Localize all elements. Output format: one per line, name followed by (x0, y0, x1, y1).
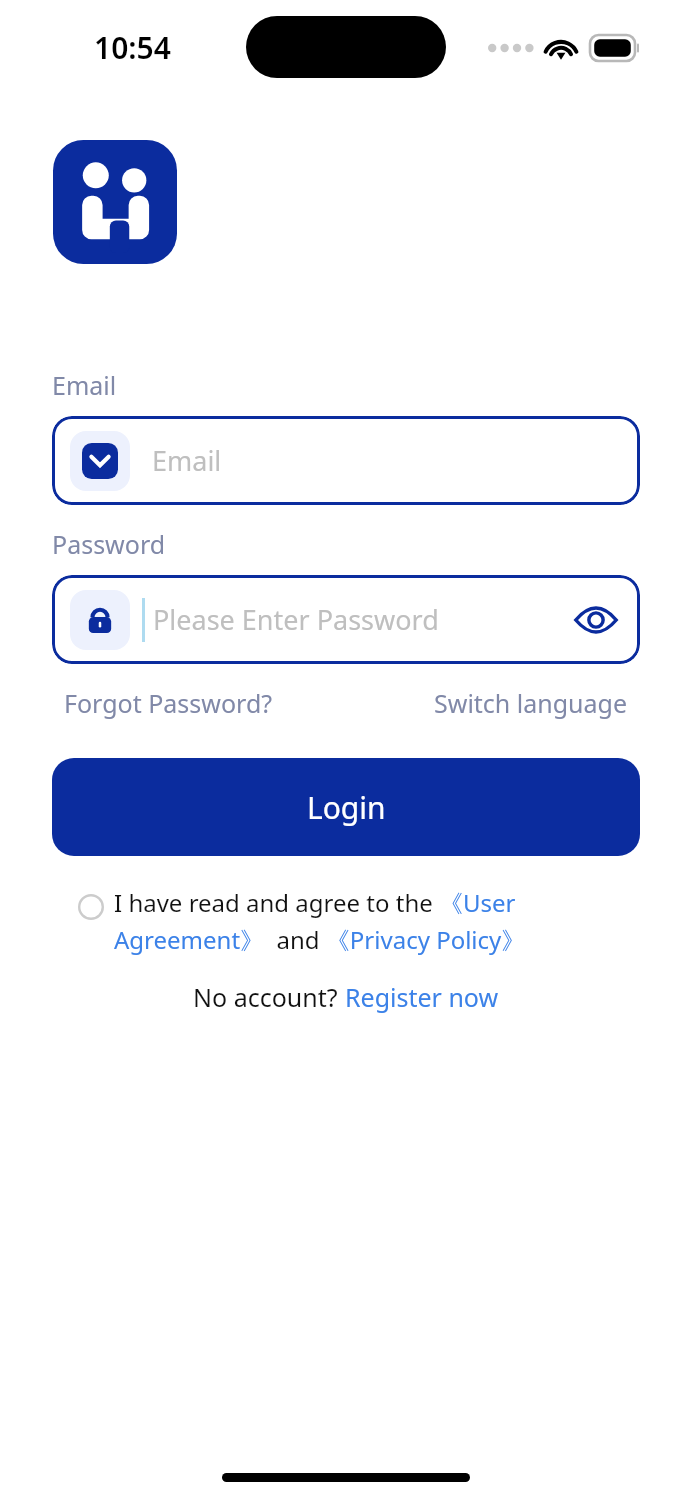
staticText: Please Enter Password (153, 601, 570, 638)
button[interactable]: Switch language (434, 686, 628, 720)
staticText: Login (307, 787, 386, 828)
button[interactable]: Agree to terms (78, 886, 652, 956)
staticText: No account? (193, 980, 345, 1014)
other: App logo (53, 140, 177, 264)
other: Agree to terms (78, 894, 104, 920)
staticText: Forgot Password? (64, 686, 273, 720)
staticText: Password (52, 527, 166, 561)
staticText: Register now (345, 980, 499, 1014)
button[interactable]: Forgot Password? (64, 686, 273, 720)
staticText: 10:54 (94, 27, 171, 68)
button[interactable]: Please Enter Password (52, 575, 640, 664)
staticText: Switch language (434, 686, 628, 720)
button[interactable]: Login (52, 758, 640, 856)
staticText: Email (52, 368, 117, 402)
button[interactable]: Register now (345, 980, 499, 1014)
staticText: I have read and agree to the 《User Agree… (114, 886, 652, 956)
button[interactable]: Show password (570, 594, 622, 646)
button[interactable]: Email (52, 416, 640, 505)
staticText: Email (152, 442, 622, 479)
